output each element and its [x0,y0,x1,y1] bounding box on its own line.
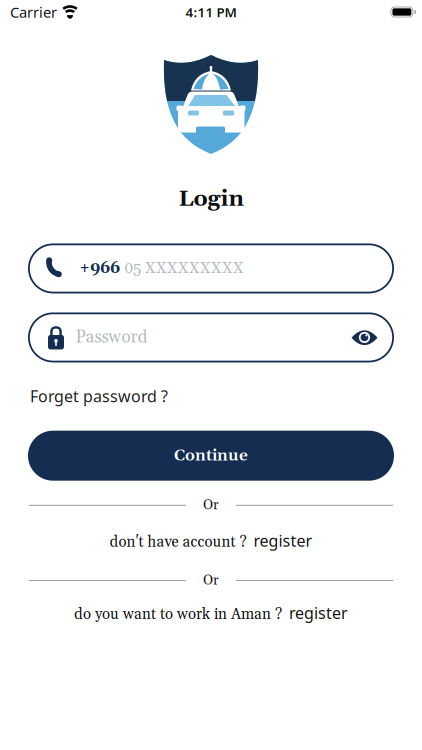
staticText: Continue [174,445,248,466]
button[interactable]: register [289,602,348,623]
staticText: Forget password ? [30,385,168,407]
staticText: Login [178,185,243,213]
staticText: +966 [79,258,120,279]
button[interactable]: Password [28,312,394,362]
staticText: 05 XXXXXXXXX [124,259,244,278]
staticText: Or [203,497,219,514]
staticText: Password [75,327,147,348]
staticText: Carrier [10,2,57,22]
staticText: do you want to work in Aman ? [74,605,282,624]
staticText: don't have account ? [109,533,246,552]
button[interactable]: +966 [28,243,394,293]
button[interactable]: Forget password ? [30,385,168,407]
button[interactable]: Continue [28,431,394,481]
button[interactable]: register [253,530,312,551]
staticText: 4:11 PM [185,3,236,21]
staticText: register [253,530,312,551]
staticText: register [289,602,348,623]
staticText: Or [203,572,219,589]
